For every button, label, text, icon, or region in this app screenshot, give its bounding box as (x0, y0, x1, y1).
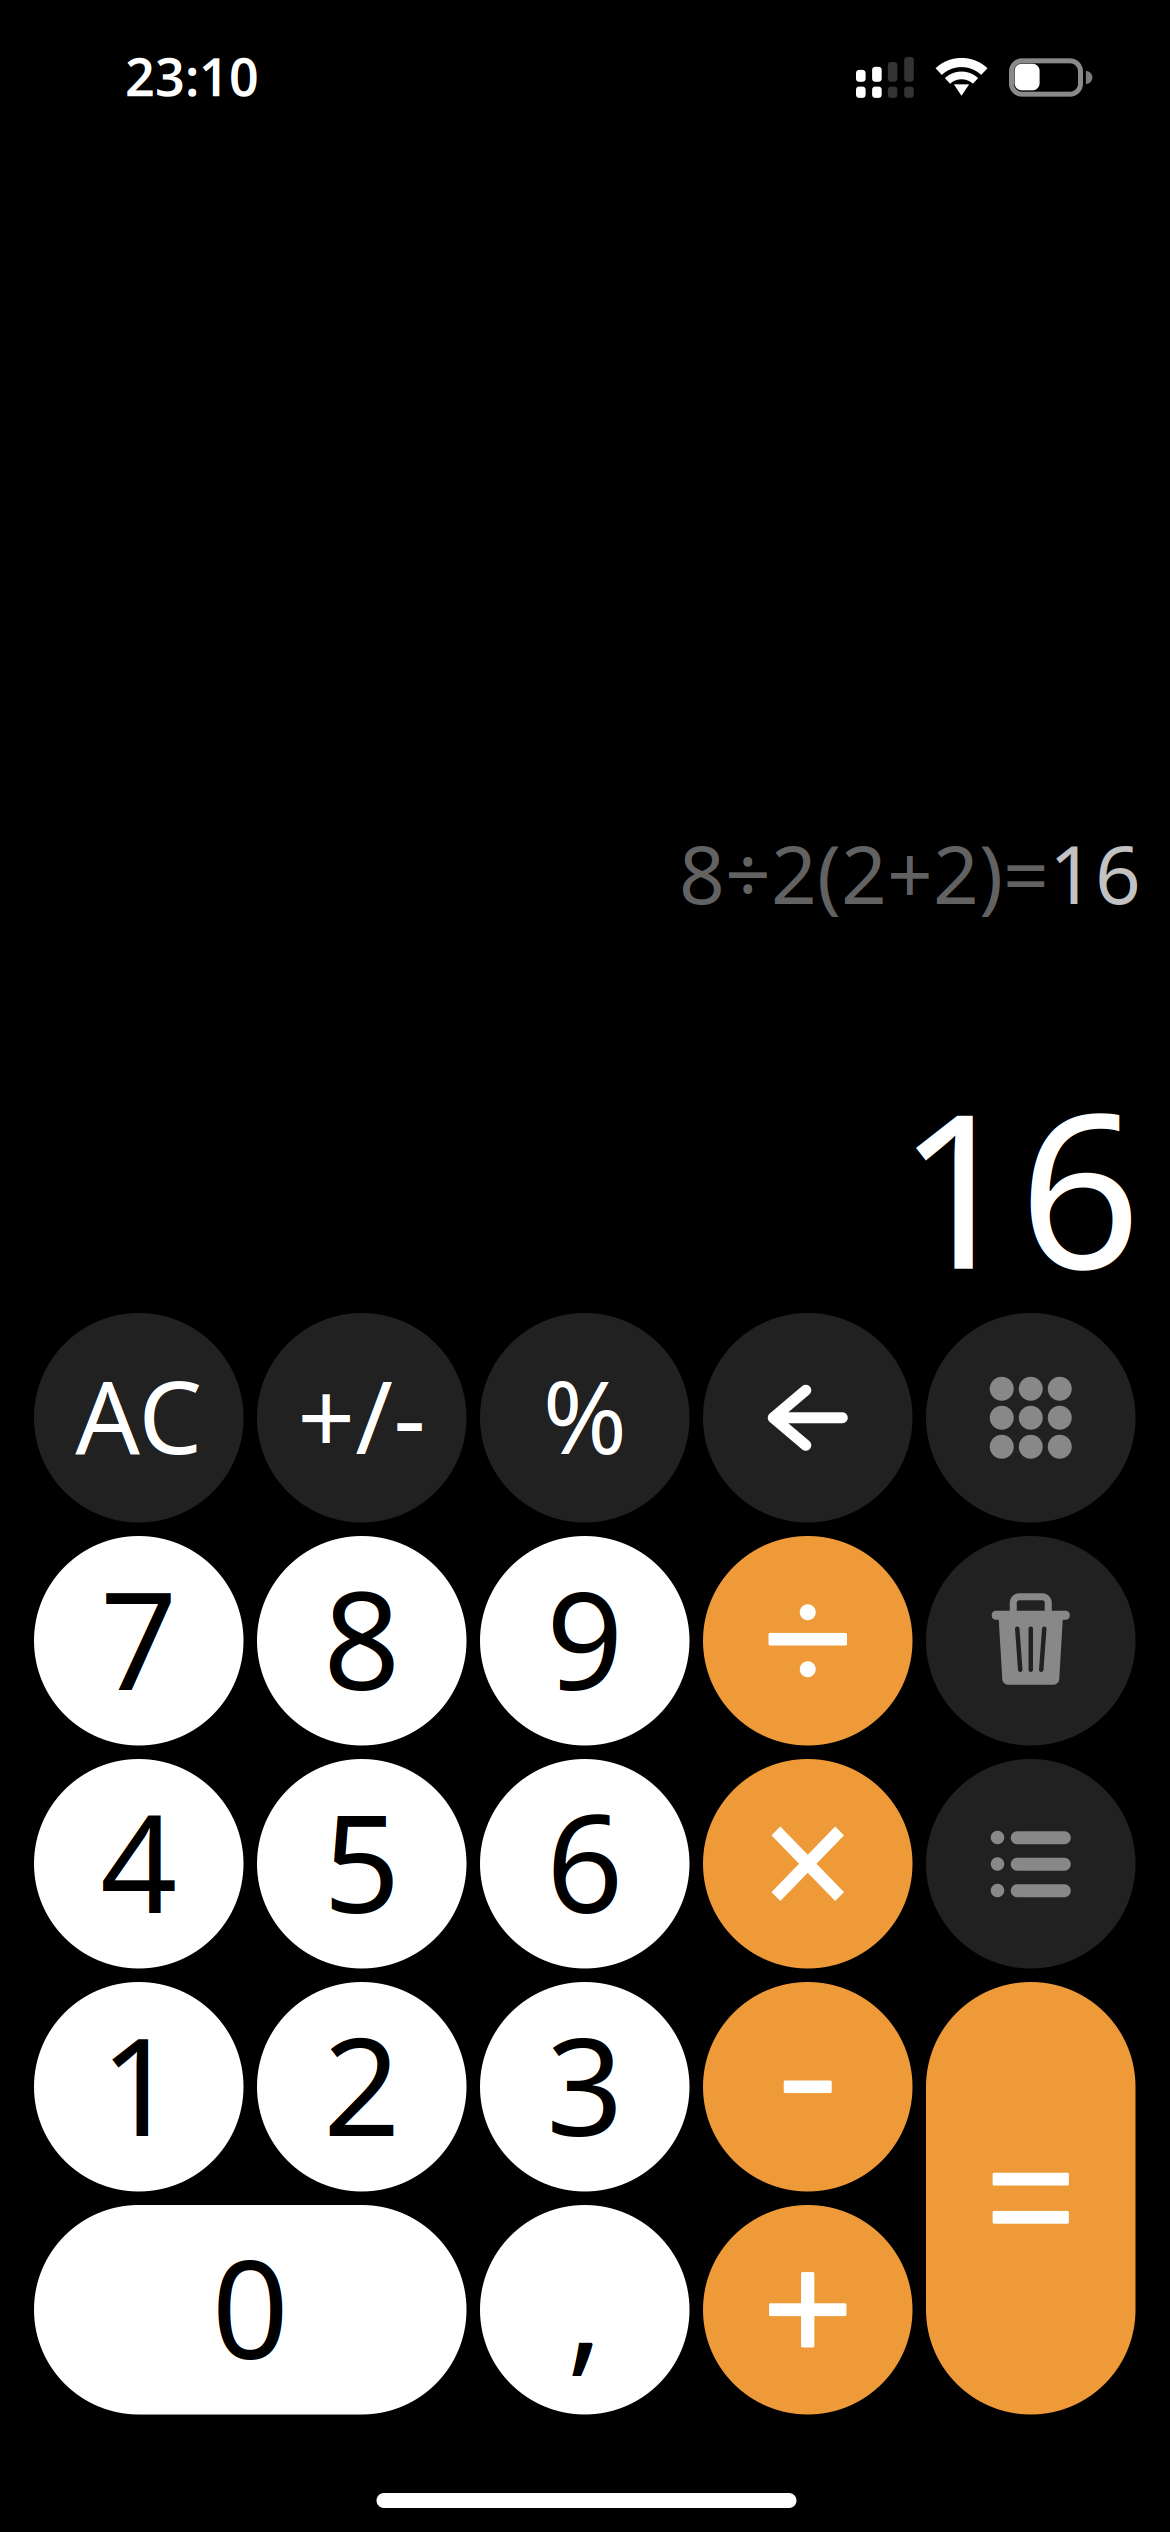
staticText: 4 (100, 1771, 177, 1950)
staticText: % (543, 1347, 627, 1482)
button[interactable]: Minus (703, 1982, 912, 2191)
button[interactable]: Plus (703, 2205, 912, 2414)
button[interactable]: Percent (480, 1313, 689, 1522)
button[interactable]: 0 (34, 2205, 466, 2414)
staticText: 5 (323, 1771, 400, 1950)
staticText: 16 (1049, 820, 1141, 926)
button[interactable]: 1 (34, 1982, 243, 2191)
button[interactable]: Divide (703, 1536, 912, 1745)
button[interactable]: Keypad (926, 1313, 1135, 1522)
button[interactable]: 4 (34, 1759, 243, 1968)
button[interactable]: 3 (480, 1982, 689, 2191)
button[interactable]: 9 (480, 1536, 689, 1745)
staticText: , (567, 2217, 603, 2396)
staticText: 23:10 (125, 41, 259, 111)
staticText: 1 (100, 1994, 177, 2173)
button[interactable]: 2 (257, 1982, 466, 2191)
button[interactable]: 6 (480, 1759, 689, 1968)
button[interactable]: 8 (257, 1536, 466, 1745)
button[interactable]: Backspace (703, 1313, 912, 1522)
staticText: 2 (323, 1994, 400, 2173)
button[interactable]: Decimal separator (480, 2205, 689, 2414)
staticText: 8 (323, 1548, 400, 1727)
staticText: 8÷2(2+2)= (679, 820, 1049, 926)
staticText: AC (75, 1347, 202, 1482)
staticText: 16 (897, 1044, 1141, 1328)
staticText: 3 (546, 1994, 623, 2173)
button[interactable]: History (926, 1759, 1135, 1968)
staticText: 9 (546, 1548, 623, 1727)
staticText: 6 (546, 1771, 623, 1950)
staticText: 0 (212, 2217, 289, 2396)
button[interactable]: Delete (926, 1536, 1135, 1745)
button[interactable]: 5 (257, 1759, 466, 1968)
button[interactable]: All clear (34, 1313, 243, 1522)
button[interactable]: 7 (34, 1536, 243, 1745)
staticText: +/- (297, 1347, 426, 1482)
button[interactable]: Toggle sign (257, 1313, 466, 1522)
staticText: 7 (100, 1548, 177, 1727)
button[interactable]: Multiply (703, 1759, 912, 1968)
button[interactable]: Equals (926, 1982, 1135, 2414)
